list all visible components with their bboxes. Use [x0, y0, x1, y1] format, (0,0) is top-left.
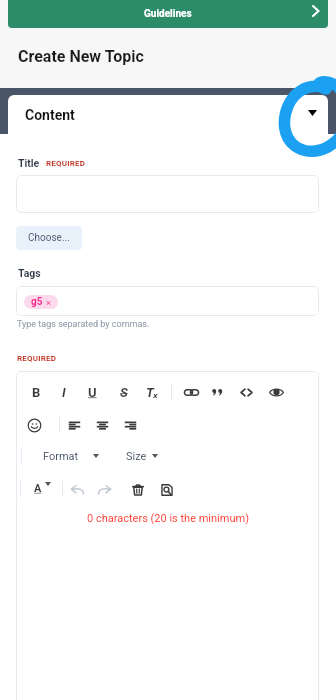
button[interactable]: Preview [269, 385, 284, 400]
staticText: S [120, 385, 128, 400]
button[interactable]: Format [37, 445, 105, 467]
button[interactable]: View source [160, 483, 174, 497]
staticText: Tₓ [146, 383, 159, 401]
staticText: Guidelines [144, 8, 192, 20]
button[interactable]: Text colour [31, 478, 55, 500]
button[interactable]: Content [8, 95, 328, 134]
button[interactable]: Delete [131, 483, 145, 497]
button[interactable]: Choose... [16, 226, 82, 250]
button[interactable] [16, 286, 319, 316]
button[interactable]: S [113, 381, 135, 403]
button[interactable]: Block quote [210, 385, 225, 400]
button[interactable]: Size [120, 445, 164, 467]
button[interactable]: Redo [97, 482, 112, 497]
staticText: Format [43, 450, 79, 463]
button[interactable]: Guidelines [8, 0, 328, 28]
button[interactable]: Code block [239, 385, 254, 400]
staticText: 0 characters (20 is the minimum) [0, 512, 336, 525]
button[interactable]: Expand section [300, 102, 324, 126]
staticText: REQUIRED [46, 159, 86, 168]
button[interactable]: Insert emoji [27, 418, 42, 433]
staticText: Size [126, 450, 147, 463]
staticText: g5 [31, 296, 43, 308]
staticText: Content [25, 107, 75, 123]
staticText: I [62, 385, 66, 400]
button[interactable]: g5 [24, 295, 58, 309]
staticText: Choose... [28, 232, 70, 244]
staticText: Create New Topic [18, 47, 144, 66]
staticText: Title [18, 157, 40, 169]
button[interactable]: Undo [70, 482, 85, 497]
button[interactable]: Insert link [184, 385, 199, 400]
button[interactable] [16, 175, 319, 213]
button[interactable]: U [81, 381, 103, 403]
button[interactable]: Align left [68, 419, 81, 432]
staticText: REQUIRED [17, 354, 57, 363]
button[interactable]: Align right [124, 419, 137, 432]
staticText: U [88, 385, 97, 400]
button[interactable]: Tₓ [141, 381, 163, 403]
staticText: Type tags separated by commas. [17, 319, 150, 330]
button[interactable]: B [25, 381, 47, 403]
button[interactable]: I [53, 381, 75, 403]
staticText: × [46, 297, 52, 308]
staticText: A [34, 482, 42, 495]
button[interactable]: Align center [96, 419, 109, 432]
staticText: B [32, 385, 41, 400]
staticText: Tags [18, 267, 41, 279]
